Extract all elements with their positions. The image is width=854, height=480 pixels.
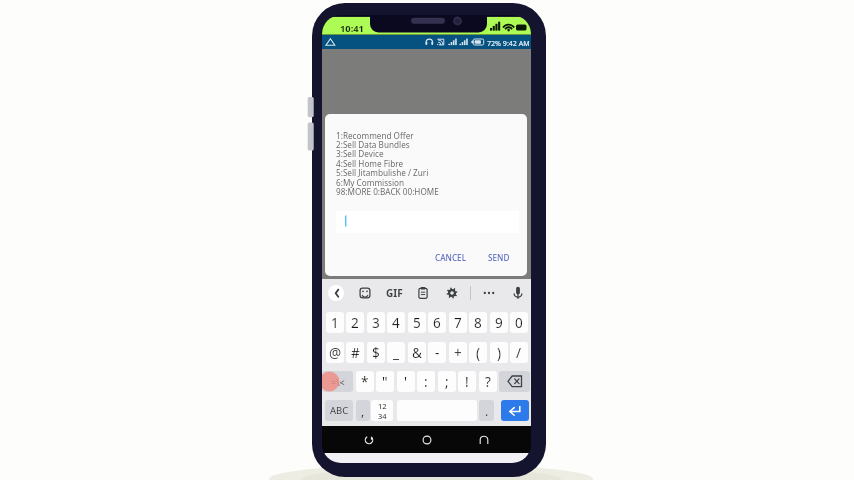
button[interactable]: / — [510, 342, 528, 363]
button[interactable]: Back — [328, 285, 344, 301]
staticText: 5 — [413, 314, 421, 332]
button[interactable]: =\< — [322, 371, 353, 392]
button[interactable]: $ — [367, 342, 385, 363]
staticText: 12 — [378, 401, 387, 411]
button[interactable]: 4 — [387, 312, 405, 333]
staticText: " — [382, 373, 388, 391]
staticText: . — [485, 403, 489, 419]
button[interactable]: Numbers — [371, 400, 393, 421]
staticText: ( — [476, 344, 481, 362]
button[interactable]: ? — [479, 371, 497, 392]
staticText: CANCEL — [435, 252, 467, 263]
button[interactable]: * — [356, 371, 374, 392]
staticText: 3 — [372, 314, 380, 332]
button[interactable]: 8 — [469, 312, 487, 333]
button[interactable]: ) — [490, 342, 508, 363]
staticText: : — [424, 373, 428, 391]
button[interactable]: ( — [469, 342, 487, 363]
staticText: 34 — [378, 411, 387, 421]
button[interactable]: ' — [397, 371, 415, 392]
staticText: 2:Sell Data Bundles — [336, 139, 410, 150]
staticText: * — [361, 373, 369, 391]
button[interactable]: - — [428, 342, 446, 363]
button[interactable]: Backspace — [499, 371, 530, 392]
button[interactable]: , — [356, 400, 370, 421]
button[interactable]: & — [408, 342, 426, 363]
staticText: GIF — [386, 286, 403, 300]
staticText: $ — [372, 344, 380, 362]
staticText: # — [351, 344, 360, 362]
button[interactable]: Enter — [501, 400, 529, 421]
staticText: ; — [445, 373, 449, 391]
staticText: @ — [329, 344, 342, 362]
button[interactable]: Voice input — [507, 282, 529, 304]
button[interactable] — [336, 211, 519, 233]
button[interactable]: Home — [415, 430, 439, 450]
button[interactable]: + — [449, 342, 467, 363]
button[interactable]: 6 — [428, 312, 446, 333]
staticText: 3:Sell Device — [336, 148, 384, 159]
staticText: ABC — [330, 404, 349, 417]
staticText: ) — [497, 344, 502, 362]
button[interactable]: Settings — [441, 282, 463, 304]
staticText: 6:My Commission — [336, 177, 405, 188]
staticText: + — [454, 344, 462, 362]
button[interactable]: 3 — [367, 312, 385, 333]
button[interactable]: Back — [357, 430, 381, 450]
button[interactable]: SEND — [483, 250, 515, 264]
staticText: / — [516, 344, 522, 362]
staticText: _ — [393, 344, 399, 362]
button[interactable]: ABC — [325, 400, 353, 421]
staticText: ' — [404, 373, 408, 391]
button[interactable]: 9 — [490, 312, 508, 333]
staticText: - — [435, 344, 440, 362]
staticText: ! — [465, 373, 469, 391]
button[interactable]: 7 — [449, 312, 467, 333]
staticText: 4:Sell Home Fibre — [336, 158, 403, 169]
staticText: SEND — [488, 252, 510, 263]
staticText: 98:MORE 0:BACK 00:HOME — [336, 186, 439, 197]
button[interactable]: GIF — [382, 286, 406, 300]
button[interactable]: Emoji — [354, 282, 376, 304]
staticText: 0 — [515, 314, 523, 332]
staticText: ? — [485, 373, 491, 391]
button[interactable]: CANCEL — [430, 250, 472, 264]
button[interactable]: 2 — [346, 312, 364, 333]
button[interactable]: More options — [478, 282, 500, 304]
button[interactable]: _ — [387, 342, 405, 363]
staticText: 5:Sell Jitambulishe / Zuri — [336, 167, 429, 178]
button[interactable]: " — [376, 371, 394, 392]
button[interactable]: ; — [438, 371, 456, 392]
button[interactable]: 0 — [510, 312, 528, 333]
staticText: 4 — [392, 314, 400, 332]
staticText: 8 — [474, 314, 482, 332]
button[interactable]: @ — [326, 342, 344, 363]
staticText: 1 — [331, 314, 339, 332]
staticText: 6 — [433, 314, 441, 332]
button[interactable]: Recent apps — [472, 430, 496, 450]
staticText: 72% 9:42 AM — [487, 38, 530, 48]
staticText: =\< — [331, 376, 345, 388]
staticText: 2 — [351, 314, 359, 332]
button[interactable]: : — [417, 371, 435, 392]
staticText: 7 — [454, 314, 462, 332]
staticText: , — [361, 403, 365, 419]
button[interactable]: . — [479, 400, 494, 421]
staticText: 9 — [495, 314, 503, 332]
button[interactable]: 5 — [408, 312, 426, 333]
button[interactable]: Clipboard — [412, 282, 434, 304]
staticText: 10:41 — [340, 22, 364, 35]
staticText: 1:Recommend Offer — [336, 130, 414, 141]
button[interactable]: 1 — [326, 312, 344, 333]
button[interactable]: # — [346, 342, 364, 363]
button[interactable]: ! — [458, 371, 476, 392]
staticText: & — [412, 344, 422, 362]
